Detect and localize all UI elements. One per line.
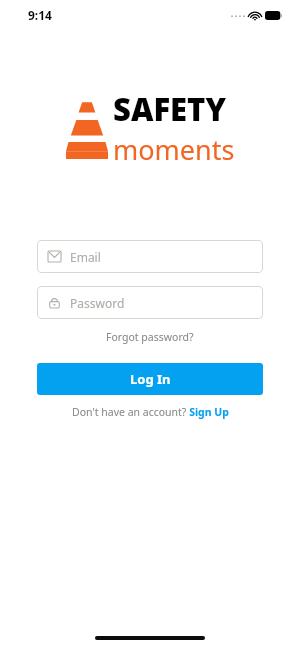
staticText: SAFETY — [113, 88, 227, 130]
staticText: Don't have an account? Sign Up — [72, 405, 229, 419]
staticText: Password — [70, 295, 125, 311]
staticText: Email — [70, 249, 101, 265]
other: Password — [48, 297, 61, 308]
other: Email — [48, 251, 61, 262]
button[interactable]: Forgot password? — [0, 330, 300, 344]
button[interactable]: Email — [37, 240, 263, 273]
staticText: moments — [113, 131, 235, 168]
staticText: Forgot password? — [106, 330, 194, 344]
staticText: 9:14 — [28, 7, 52, 23]
button[interactable]: Log In — [37, 363, 263, 395]
staticText: Log In — [130, 370, 171, 388]
button[interactable]: Password — [37, 286, 263, 319]
button[interactable]: Don't have an account? Sign Up — [0, 405, 300, 419]
